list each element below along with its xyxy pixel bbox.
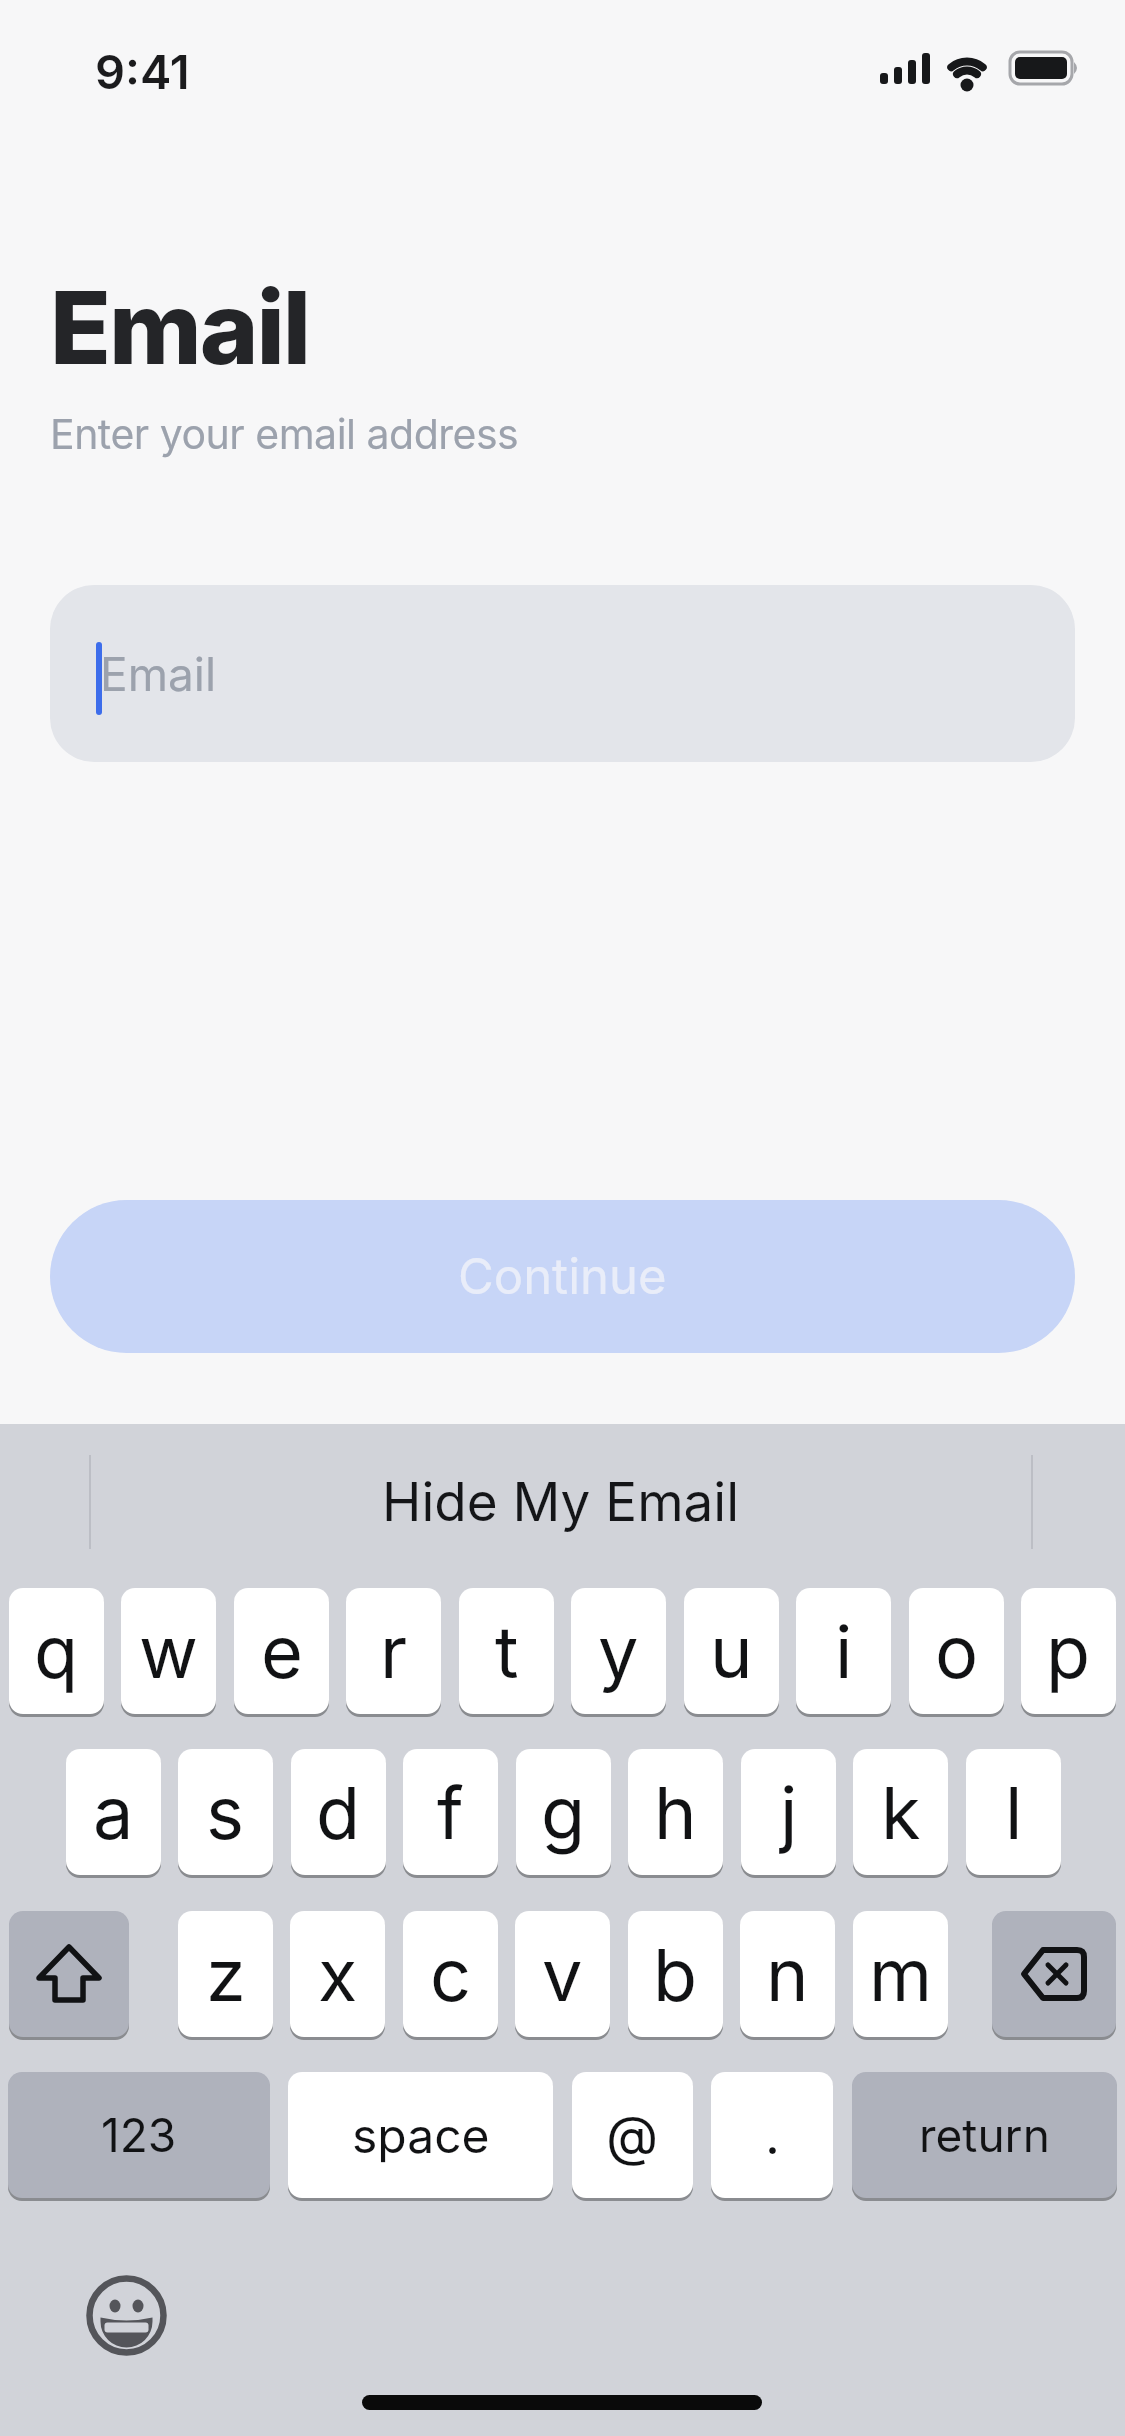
- button[interactable]: m: [853, 1911, 948, 2037]
- staticText: 123: [101, 2107, 177, 2163]
- button[interactable]: y: [571, 1588, 666, 1714]
- button[interactable]: u: [684, 1588, 779, 1714]
- button[interactable]: @: [572, 2072, 693, 2198]
- button[interactable]: q: [9, 1588, 104, 1714]
- button[interactable]: b: [628, 1911, 723, 2037]
- staticText: l: [1005, 1769, 1023, 1856]
- staticText: return: [919, 2107, 1050, 2163]
- staticText: p: [1046, 1608, 1091, 1695]
- staticText: x: [318, 1931, 358, 2018]
- staticText: r: [380, 1608, 408, 1695]
- button[interactable]: w: [121, 1588, 216, 1714]
- staticText: m: [869, 1931, 933, 2018]
- button[interactable]: [9, 1911, 129, 2037]
- staticText: space: [352, 2106, 490, 2164]
- staticText: q: [34, 1608, 79, 1695]
- button[interactable]: h: [628, 1749, 723, 1875]
- staticText: w: [139, 1608, 198, 1695]
- button[interactable]: [992, 1911, 1116, 2037]
- staticText: f: [437, 1769, 464, 1856]
- button[interactable]: g: [516, 1749, 611, 1875]
- staticText: i: [835, 1608, 853, 1695]
- button[interactable]: Continue: [50, 1200, 1075, 1353]
- button[interactable]: r: [346, 1588, 441, 1714]
- staticText: b: [653, 1931, 698, 2018]
- staticText: z: [206, 1931, 246, 2018]
- staticText: v: [542, 1931, 583, 2018]
- staticText: @: [606, 2103, 659, 2168]
- button[interactable]: c: [403, 1911, 498, 2037]
- button[interactable]: .: [711, 2072, 833, 2198]
- staticText: g: [541, 1769, 586, 1856]
- staticText: j: [780, 1769, 798, 1856]
- staticText: d: [316, 1769, 361, 1856]
- button[interactable]: Hide My Email: [91, 1440, 1031, 1564]
- button[interactable]: n: [740, 1911, 835, 2037]
- staticText: a: [93, 1769, 134, 1856]
- button[interactable]: return: [852, 2072, 1117, 2198]
- staticText: n: [766, 1931, 809, 2018]
- staticText: h: [654, 1769, 697, 1856]
- button[interactable]: d: [291, 1749, 386, 1875]
- button[interactable]: z: [178, 1911, 273, 2037]
- button[interactable]: s: [178, 1749, 273, 1875]
- staticText: e: [261, 1608, 303, 1695]
- staticText: Continue: [458, 1247, 667, 1306]
- button[interactable]: space: [288, 2072, 553, 2198]
- staticText: t: [495, 1608, 519, 1695]
- staticText: c: [430, 1931, 472, 2018]
- staticText: y: [598, 1608, 639, 1695]
- button[interactable]: a: [66, 1749, 161, 1875]
- button[interactable]: i: [796, 1588, 891, 1714]
- button[interactable]: e: [234, 1588, 329, 1714]
- button[interactable]: v: [515, 1911, 610, 2037]
- button[interactable]: Email: [50, 585, 1075, 762]
- button[interactable]: x: [290, 1911, 385, 2037]
- button[interactable]: j: [741, 1749, 836, 1875]
- button[interactable]: o: [909, 1588, 1004, 1714]
- staticText: o: [935, 1608, 979, 1695]
- staticText: k: [881, 1769, 921, 1856]
- button[interactable]: l: [966, 1749, 1061, 1875]
- button[interactable]: p: [1021, 1588, 1116, 1714]
- button[interactable]: f: [403, 1749, 498, 1875]
- button[interactable]: 123: [8, 2072, 270, 2198]
- staticText: Hide My Email: [382, 1470, 740, 1534]
- staticText: Enter your email address: [50, 409, 519, 459]
- staticText: s: [206, 1769, 245, 1856]
- button[interactable]: k: [853, 1749, 948, 1875]
- staticText: 9:41: [95, 43, 190, 100]
- staticText: .: [765, 2104, 780, 2167]
- staticText: u: [710, 1608, 753, 1695]
- staticText: Email: [100, 646, 217, 702]
- button[interactable]: [86, 2275, 167, 2356]
- button[interactable]: t: [459, 1588, 554, 1714]
- staticText: Email: [50, 267, 310, 388]
